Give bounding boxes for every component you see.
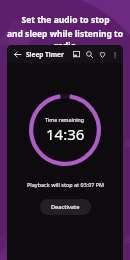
button[interactable]: Search xyxy=(84,49,95,60)
staticText: Sleep Timer xyxy=(26,50,64,59)
staticText: Set the audio to stop xyxy=(21,14,110,26)
staticText: and sleep while listening to radio xyxy=(4,28,126,52)
staticText: Time remaining xyxy=(45,116,85,123)
button[interactable]: Back xyxy=(11,48,23,60)
staticText: Playback will stop at 03:07 PM xyxy=(27,181,104,188)
button[interactable]: More options xyxy=(110,50,119,59)
button[interactable]: Favorite xyxy=(97,49,108,60)
button[interactable]: Cast xyxy=(71,49,82,60)
staticText: Deactivate xyxy=(51,203,80,211)
button[interactable]: Deactivate xyxy=(40,199,91,215)
staticText: 14:36 xyxy=(46,124,85,144)
